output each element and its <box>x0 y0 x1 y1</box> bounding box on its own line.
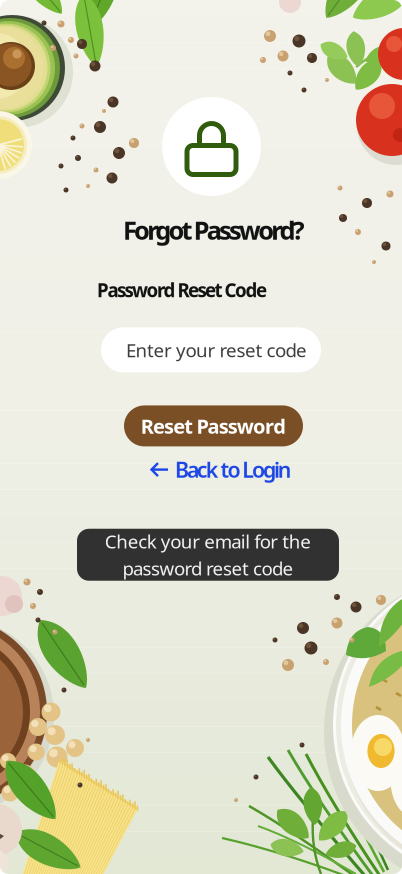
button[interactable]: Reset Password <box>124 405 303 446</box>
button[interactable]: Back to Login <box>150 455 292 484</box>
staticText: Password Reset Code <box>97 278 267 302</box>
staticText: Reset Password <box>141 413 286 439</box>
staticText: Enter your reset code <box>126 337 307 362</box>
staticText: Check your email for the <box>105 529 311 554</box>
staticText: password reset code <box>122 556 293 581</box>
staticText: Forgot Password? <box>123 213 304 247</box>
staticText: Back to Login <box>175 455 292 484</box>
